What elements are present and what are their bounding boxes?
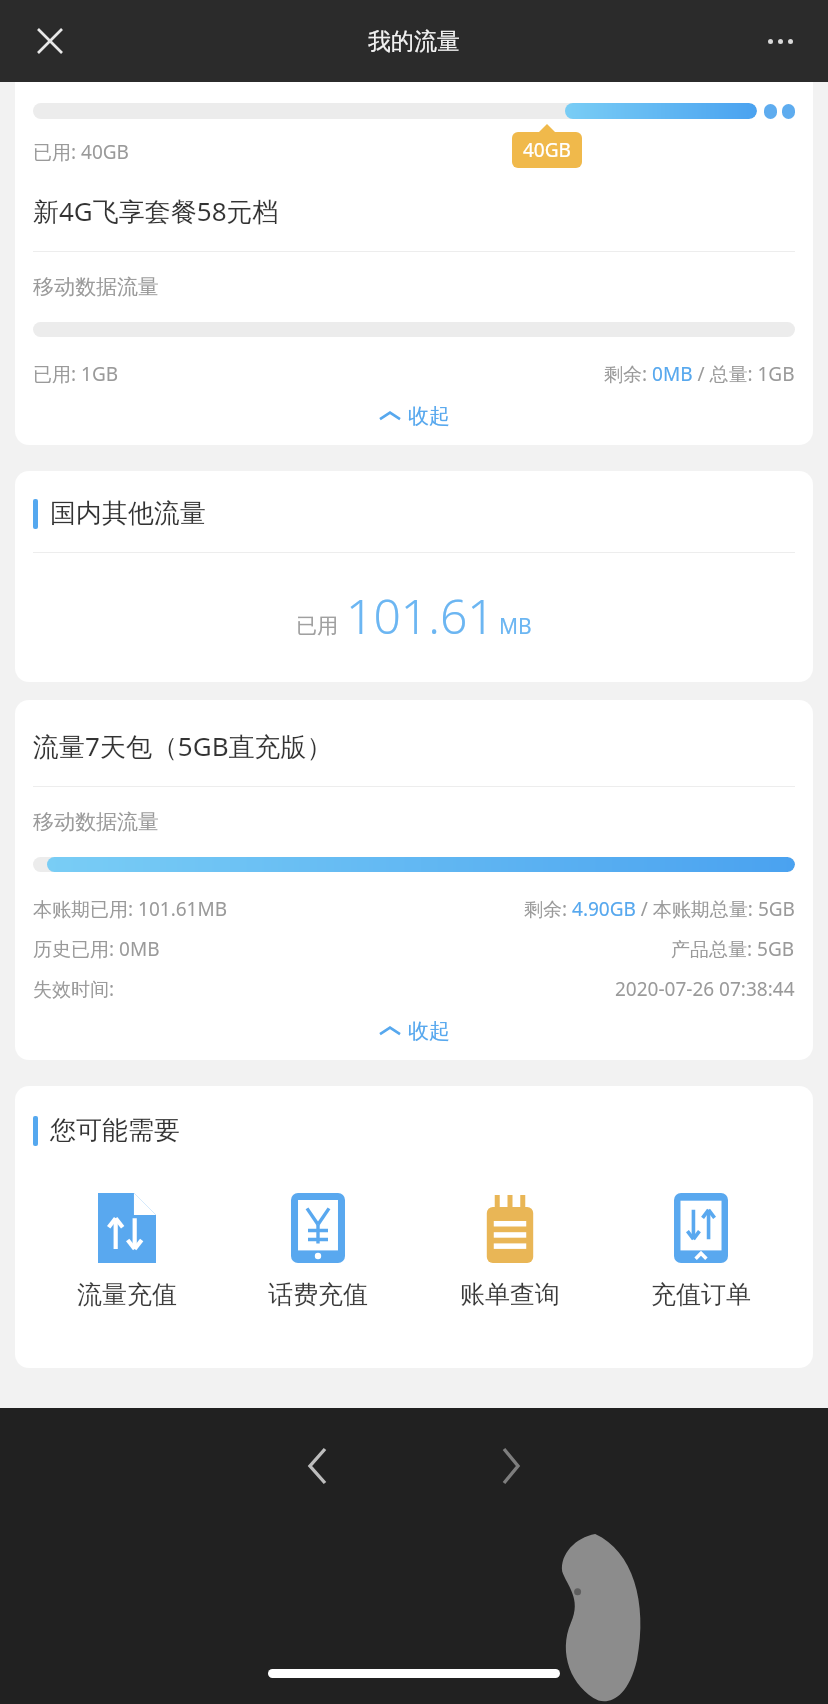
button[interactable]: 收起 bbox=[15, 1002, 813, 1060]
staticText: 失效时间: bbox=[33, 976, 115, 1002]
staticText: 已用: 1GB bbox=[33, 361, 119, 387]
button[interactable]: 话费充值 bbox=[233, 1189, 403, 1314]
staticText: 40GB bbox=[523, 137, 571, 163]
staticText: 历史已用: 0MB bbox=[33, 936, 160, 962]
button[interactable]: 流量充值 bbox=[42, 1189, 212, 1314]
button[interactable]: More options bbox=[752, 13, 808, 69]
staticText: 剩余: 4.90GB / 本账期总量: 5GB bbox=[524, 896, 795, 922]
staticText: 收起 bbox=[408, 403, 450, 429]
staticText: 我的流量 bbox=[368, 27, 460, 56]
staticText: 已用 bbox=[296, 613, 338, 639]
staticText: 移动数据流量 bbox=[33, 274, 159, 300]
button[interactable]: 充值订单 bbox=[616, 1189, 786, 1314]
staticText: 流量充值 bbox=[77, 1279, 177, 1310]
staticText: 剩余: 0MB / 总量: 1GB bbox=[604, 361, 795, 387]
staticText: 新4G飞享套餐58元档 bbox=[33, 193, 279, 229]
staticText: 移动数据流量 bbox=[33, 809, 159, 835]
staticText: 您可能需要 bbox=[50, 1114, 180, 1147]
staticText: 已用: 40GB bbox=[33, 139, 129, 165]
staticText: 账单查询 bbox=[460, 1279, 560, 1310]
staticText: 国内其他流量 bbox=[50, 497, 206, 530]
staticText: 流量7天包（5GB直充版） bbox=[33, 728, 333, 764]
button[interactable]: Back bbox=[285, 1434, 349, 1498]
staticText: 产品总量: 5GB bbox=[671, 936, 795, 962]
staticText: 话费充值 bbox=[268, 1279, 368, 1310]
staticText: 本账期已用: 101.61MB bbox=[33, 896, 228, 922]
button[interactable]: Forward bbox=[479, 1434, 543, 1498]
button[interactable]: 账单查询 bbox=[425, 1189, 595, 1314]
staticText: 101.61 bbox=[346, 583, 495, 648]
staticText: 充值订单 bbox=[651, 1279, 751, 1310]
button[interactable]: 收起 bbox=[15, 387, 813, 445]
button[interactable]: Close bbox=[22, 13, 78, 69]
staticText: 收起 bbox=[408, 1018, 450, 1044]
staticText: MB bbox=[499, 612, 532, 641]
staticText: 2020-07-26 07:38:44 bbox=[615, 976, 795, 1002]
